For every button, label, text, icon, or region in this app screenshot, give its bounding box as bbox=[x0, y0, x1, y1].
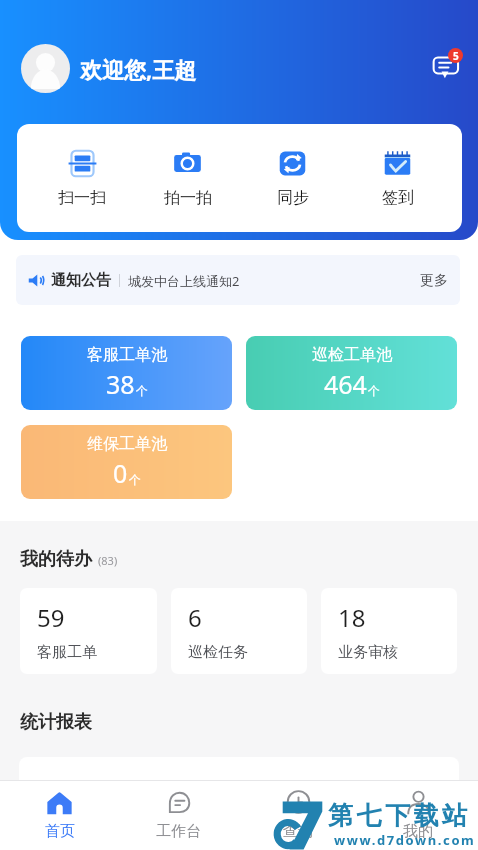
button[interactable]: 59 bbox=[20, 588, 157, 674]
staticText: 客服工单池 bbox=[87, 345, 167, 365]
staticText: 签到 bbox=[382, 188, 414, 208]
button[interactable]: 我的 bbox=[358, 781, 478, 850]
staticText: 0 bbox=[113, 456, 128, 490]
button[interactable]: 签到 bbox=[345, 124, 450, 232]
button[interactable]: Messages bbox=[430, 47, 463, 80]
staticText: 第七下载站 bbox=[328, 800, 471, 831]
staticText: 查询 bbox=[283, 822, 313, 841]
staticText: 个 bbox=[136, 383, 148, 398]
button[interactable]: 巡检工单池 bbox=[246, 336, 457, 410]
button[interactable]: 首页 bbox=[0, 781, 119, 850]
staticText: 统计报表 bbox=[20, 711, 92, 734]
staticText: 首页 bbox=[45, 822, 75, 841]
staticText: 城发中台上线通知2 bbox=[128, 272, 240, 290]
staticText: 38 bbox=[106, 367, 135, 401]
staticText: 业务审核 bbox=[338, 643, 398, 662]
staticText: 我的 bbox=[403, 822, 433, 841]
button[interactable]: 18 bbox=[321, 588, 457, 674]
staticText: 个 bbox=[129, 472, 141, 487]
staticText: 5 bbox=[453, 49, 459, 63]
staticText: 维保工单池 bbox=[87, 434, 167, 454]
staticText: 工作台 bbox=[156, 822, 201, 841]
staticText: 巡检任务 bbox=[188, 643, 248, 662]
button[interactable]: 同步 bbox=[240, 124, 345, 232]
button[interactable]: 通知公告 bbox=[16, 255, 460, 305]
staticText: 巡检工单池 bbox=[312, 345, 392, 365]
staticText: (83) bbox=[98, 553, 118, 568]
staticText: 欢迎您,王超 bbox=[80, 54, 197, 84]
staticText: 更多 bbox=[420, 272, 448, 290]
staticText: 464 bbox=[324, 367, 367, 401]
staticText: 我的待办 bbox=[20, 548, 92, 571]
button[interactable]: 客服工单池 bbox=[21, 336, 232, 410]
staticText: www.d7down.com bbox=[334, 831, 476, 849]
staticText: 个 bbox=[368, 383, 380, 398]
staticText: 通知公告 bbox=[51, 271, 111, 290]
staticText: 拍一拍 bbox=[164, 188, 212, 208]
staticText: 18 bbox=[338, 601, 366, 634]
staticText: 扫一扫 bbox=[58, 188, 106, 208]
button[interactable]: 6 bbox=[171, 588, 307, 674]
button[interactable]: 拍一拍 bbox=[135, 124, 240, 232]
button[interactable]: 工作台 bbox=[119, 781, 238, 850]
staticText: 同步 bbox=[277, 188, 309, 208]
button[interactable]: 查询 bbox=[238, 781, 358, 850]
button[interactable]: 维保工单池 bbox=[21, 425, 232, 499]
staticText: 6 bbox=[188, 601, 202, 634]
button[interactable]: 扫一扫 bbox=[29, 124, 135, 232]
staticText: 客服工单 bbox=[37, 643, 97, 662]
staticText: 59 bbox=[37, 601, 65, 634]
